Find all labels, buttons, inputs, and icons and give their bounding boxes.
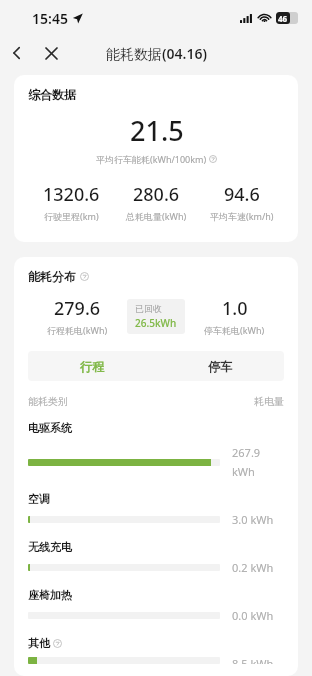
staticText: 平均行车能耗(kWh/100km) <box>96 153 207 165</box>
staticText: 行程耗电(kWh) <box>47 324 108 336</box>
staticText: 电驱系统 <box>28 421 72 435</box>
button[interactable]: 停车 <box>156 351 284 381</box>
staticText: 能耗类别 <box>28 395 68 408</box>
staticText: 46 <box>278 13 288 24</box>
staticText: 空调 <box>28 492 50 506</box>
staticText: 平均车速(km/h) <box>210 210 274 222</box>
staticText: 其他 <box>28 636 50 650</box>
button[interactable]: 行程 <box>28 351 156 381</box>
staticText: 1320.6 <box>43 182 100 207</box>
staticText: 1.0 <box>222 296 248 321</box>
staticText: 21.5 <box>130 112 184 149</box>
staticText: 280.6 <box>133 182 180 207</box>
staticText: 无线充电 <box>28 540 72 554</box>
staticText: kWh <box>232 464 255 479</box>
staticText: 279.6 <box>54 296 101 321</box>
staticText: 耗电量 <box>254 395 284 408</box>
staticText: 267.9 <box>232 445 261 460</box>
staticText: 座椅加热 <box>28 588 72 602</box>
staticText: 8.5 kWh <box>232 656 274 664</box>
staticText: 94.6 <box>224 182 260 207</box>
staticText: 总耗电量(kWh) <box>126 210 187 222</box>
staticText: 26.5kWh <box>135 316 177 330</box>
staticText: 行驶里程(km) <box>44 210 99 222</box>
staticText: 能耗数据(04.16) <box>106 44 207 63</box>
staticText: 行程 <box>80 359 104 374</box>
staticText: 停车 <box>208 359 232 374</box>
staticText: 0.2 kWh <box>232 560 274 575</box>
staticText: 能耗分布 <box>28 269 76 284</box>
staticText: 停车耗电(kWh) <box>204 324 265 336</box>
button[interactable]: Back <box>0 36 34 70</box>
button[interactable]: Close <box>34 36 68 70</box>
staticText: 15:45 <box>32 9 68 28</box>
staticText: 已回收 <box>135 303 162 314</box>
staticText: 3.0 kWh <box>232 512 274 527</box>
staticText: 0.0 kWh <box>232 608 274 623</box>
staticText: 综合数据 <box>28 87 76 102</box>
